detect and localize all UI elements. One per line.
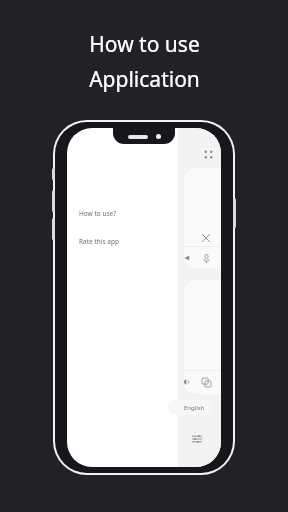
button[interactable]: Close	[198, 230, 214, 246]
button[interactable]: Settings	[189, 431, 205, 447]
button[interactable]: Copy	[198, 374, 214, 390]
button[interactable]: Voice input	[198, 250, 214, 266]
button[interactable]: Previous	[184, 250, 194, 266]
staticText: How to use?	[79, 209, 117, 218]
staticText: Rate this app	[79, 237, 119, 246]
button[interactable]: How to use?	[79, 208, 117, 219]
button[interactable]: Speak	[184, 374, 194, 390]
staticText: English	[184, 404, 205, 412]
button[interactable]: Rate this app	[79, 236, 119, 247]
button[interactable]: English	[168, 400, 211, 415]
button[interactable]: Apps	[200, 146, 216, 162]
staticText: How to use	[89, 30, 200, 59]
staticText: Application	[89, 65, 200, 94]
